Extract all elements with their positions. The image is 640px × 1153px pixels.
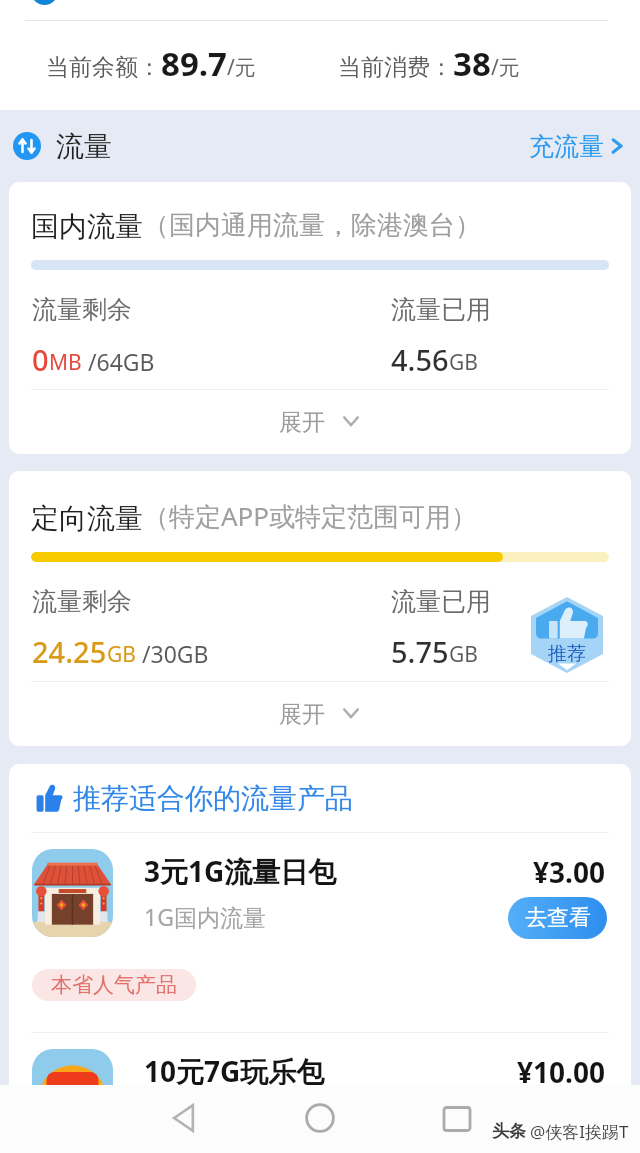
staticText: 流量 xyxy=(56,129,112,164)
staticText: （特定APP或特定范围可用） xyxy=(143,498,478,534)
staticText: ¥10.00 xyxy=(517,1053,605,1091)
staticText: 流量剩余 xyxy=(32,294,132,325)
staticText: 38 xyxy=(453,41,491,86)
staticText: 流量已用 xyxy=(391,586,491,617)
staticText: /元 xyxy=(227,53,256,82)
button[interactable]: Back xyxy=(154,1088,214,1148)
staticText: 1G国内流量 xyxy=(144,901,266,932)
staticText: 展开 xyxy=(279,700,325,729)
staticText: /64GB xyxy=(82,346,155,377)
staticText: @侠客I挨踢T xyxy=(530,1120,629,1143)
staticText: 5.75 xyxy=(391,632,449,671)
staticText: 头条 xyxy=(492,1121,526,1142)
staticText: 推荐适合你的流量产品 xyxy=(73,781,353,816)
staticText: 流量剩余 xyxy=(32,586,132,617)
button[interactable]: 流量 xyxy=(0,110,640,182)
button[interactable]: 10元7G玩乐包 xyxy=(9,1033,631,1153)
button[interactable]: Recents xyxy=(427,1089,487,1149)
staticText: 0 xyxy=(32,340,49,379)
staticText: /30GB xyxy=(136,638,209,669)
staticText: GB xyxy=(449,348,478,377)
button[interactable]: 展开 xyxy=(9,390,631,454)
staticText: ¥3.00 xyxy=(533,853,605,891)
staticText: 推荐 xyxy=(548,642,586,666)
button[interactable]: 去查看 xyxy=(508,897,607,939)
staticText: 3元1G流量日包 xyxy=(144,852,337,890)
staticText: GB xyxy=(107,640,136,669)
staticText: 本省人气产品 xyxy=(51,972,177,998)
staticText: 展开 xyxy=(279,408,325,437)
staticText: 当前余额： xyxy=(46,53,161,82)
staticText: 去查看 xyxy=(525,904,591,932)
staticText: （国内通用流量，除港澳台） xyxy=(143,209,481,242)
staticText: 国内流量 xyxy=(31,209,143,244)
staticText: 定向流量 xyxy=(31,501,143,536)
button[interactable]: 展开 xyxy=(9,682,631,746)
staticText: GB xyxy=(449,640,478,669)
staticText: MB xyxy=(49,348,82,377)
staticText: 充流量 xyxy=(529,131,604,162)
button[interactable]: 推荐适合你的流量产品 xyxy=(9,764,631,832)
staticText: 24.25 xyxy=(32,632,107,671)
staticText: 流量已用 xyxy=(391,294,491,325)
button[interactable]: Home xyxy=(290,1088,350,1148)
staticText: 89.7 xyxy=(161,41,227,86)
staticText: 当前消费： xyxy=(338,53,453,82)
staticText: 4.56 xyxy=(391,340,449,379)
button[interactable]: 3元1G流量日包 xyxy=(9,833,631,1032)
staticText: /元 xyxy=(491,53,520,82)
staticText: 10元7G玩乐包 xyxy=(144,1052,325,1090)
